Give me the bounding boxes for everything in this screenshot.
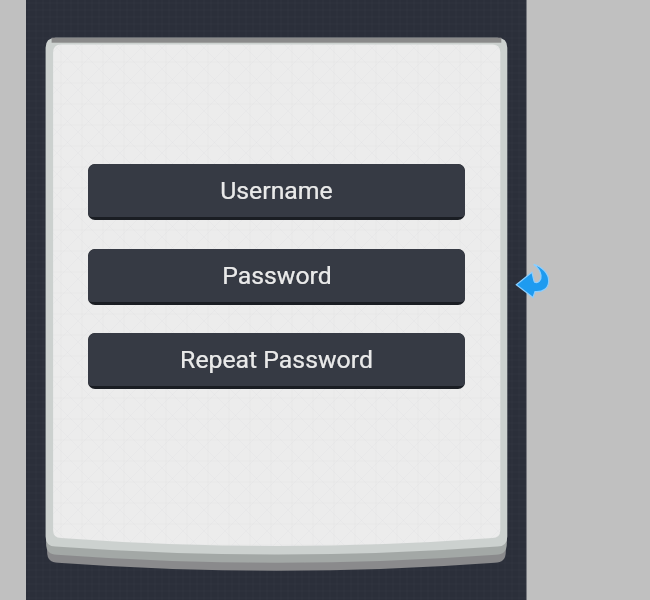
button[interactable]: Repeat Password xyxy=(88,333,465,389)
button[interactable]: Username xyxy=(88,164,465,220)
button[interactable]: Password xyxy=(88,249,465,305)
staticText: Password xyxy=(222,261,332,290)
staticText: Username xyxy=(220,176,333,205)
button[interactable]: Undo xyxy=(514,261,552,299)
staticText: Repeat Password xyxy=(180,345,373,374)
